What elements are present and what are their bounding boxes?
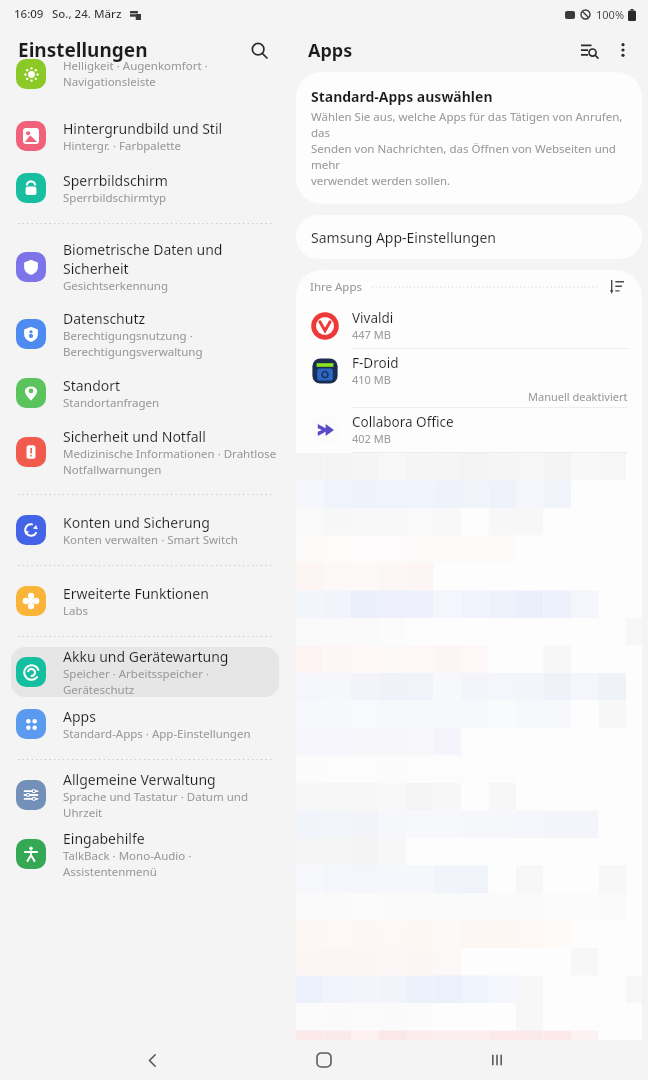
staticText: Notfallwarnungen xyxy=(63,462,162,478)
staticText: F-Droid xyxy=(352,354,399,372)
staticText: Allgemeine Verwaltung xyxy=(63,770,216,789)
staticText: Ihre Apps xyxy=(310,279,363,295)
staticText: Hintergr. · Farbpalette xyxy=(63,138,182,154)
staticText: Medizinische Informationen · Drahtlose xyxy=(63,446,277,462)
staticText: Eingabehilfe xyxy=(63,829,145,848)
staticText: Sicherheit xyxy=(63,259,129,278)
staticText: Apps xyxy=(308,38,353,63)
staticText: Speicher · Arbeitsspeicher · Geräteschut… xyxy=(63,666,279,697)
button[interactable]: F-Droid xyxy=(296,349,642,407)
staticText: Vivaldi xyxy=(352,309,394,327)
button[interactable]: Erweiterte Funktionen xyxy=(11,576,279,626)
staticText: 410 MB xyxy=(352,372,391,387)
button[interactable]: Allgemeine Verwaltung xyxy=(11,770,279,820)
button[interactable]: Sicherheit und Notfall xyxy=(11,420,279,484)
staticText: Senden von Nachrichten, das Öffnen von W… xyxy=(311,141,627,173)
staticText: Sprache und Tastatur · Datum und Uhrzeit xyxy=(63,789,279,820)
button[interactable]: Sortieren xyxy=(606,276,628,298)
button[interactable]: Datenschutz xyxy=(11,302,279,366)
staticText: Hintergrundbild und Stil xyxy=(63,119,223,138)
staticText: Collabora Office xyxy=(352,413,454,431)
staticText: Akku und Gerätewartung xyxy=(63,647,229,666)
staticText: Apps xyxy=(63,707,96,726)
staticText: So., 24. März xyxy=(52,6,122,22)
button[interactable]: Vivaldi xyxy=(296,304,642,348)
staticText: Sperrbildschirmtyp xyxy=(63,190,167,206)
staticText: 16:09 xyxy=(14,6,44,22)
staticText: Konten verwalten · Smart Switch xyxy=(63,532,238,548)
staticText: Berechtigungsverwaltung xyxy=(63,344,203,360)
staticText: Navigationsleiste xyxy=(63,74,156,90)
staticText: Einstellungen xyxy=(18,37,148,63)
button[interactable]: Zurück xyxy=(131,1040,173,1080)
button[interactable]: Samsung App-Einstellungen xyxy=(296,215,642,259)
button[interactable]: Letzte Apps xyxy=(476,1040,518,1080)
staticText: Manuell deaktiviert xyxy=(528,389,628,404)
staticText: Biometrische Daten und xyxy=(63,240,223,259)
staticText: Sicherheit und Notfall xyxy=(63,427,206,446)
button[interactable]: Suchen xyxy=(242,33,276,67)
button[interactable]: Collabora Office xyxy=(296,408,642,452)
button[interactable]: Sperrbildschirm xyxy=(11,163,279,213)
button[interactable]: Weitere Optionen xyxy=(606,33,640,67)
staticText: Samsung App-Einstellungen xyxy=(311,228,496,247)
staticText: Sperrbildschirm xyxy=(63,171,168,190)
button[interactable]: Hintergrundbild und Stil xyxy=(11,111,279,161)
staticText: Wählen Sie aus, welche Apps für das Täti… xyxy=(311,109,627,141)
button[interactable]: Standort xyxy=(11,368,279,418)
staticText: Gesichtserkennung xyxy=(63,278,168,294)
staticText: Assistentenmenü xyxy=(63,864,157,880)
staticText: Berechtigungsnutzung · xyxy=(63,328,193,344)
staticText: 447 MB xyxy=(352,327,391,342)
staticText: TalkBack · Mono-Audio · xyxy=(63,848,192,864)
button[interactable]: Startbildschirm xyxy=(303,1040,345,1080)
button[interactable]: Akku und Gerätewartung xyxy=(11,647,279,697)
button[interactable]: Biometrische Daten und xyxy=(11,234,279,300)
staticText: Konten und Sicherung xyxy=(63,513,210,532)
button[interactable]: Helligkeit · Augenkomfort · xyxy=(0,72,290,110)
staticText: Standortanfragen xyxy=(63,395,160,411)
staticText: Labs xyxy=(63,603,89,619)
staticText: Erweiterte Funktionen xyxy=(63,584,209,603)
button[interactable]: Apps durchsuchen xyxy=(572,33,606,67)
staticText: 100% xyxy=(596,7,625,22)
button[interactable]: Standard-Apps auswählen xyxy=(296,72,642,204)
staticText: Standard-Apps · App-Einstellungen xyxy=(63,726,251,742)
button[interactable]: Konten und Sicherung xyxy=(11,505,279,555)
staticText: Helligkeit · Augenkomfort · xyxy=(63,58,208,74)
staticText: Standort xyxy=(63,376,121,395)
button[interactable]: Apps xyxy=(11,699,279,749)
staticText: 402 MB xyxy=(352,431,391,446)
button[interactable]: Eingabehilfe xyxy=(11,822,279,886)
staticText: Datenschutz xyxy=(63,309,146,328)
staticText: Standard-Apps auswählen xyxy=(311,87,493,106)
staticText: verwendet werden sollen. xyxy=(311,173,451,189)
